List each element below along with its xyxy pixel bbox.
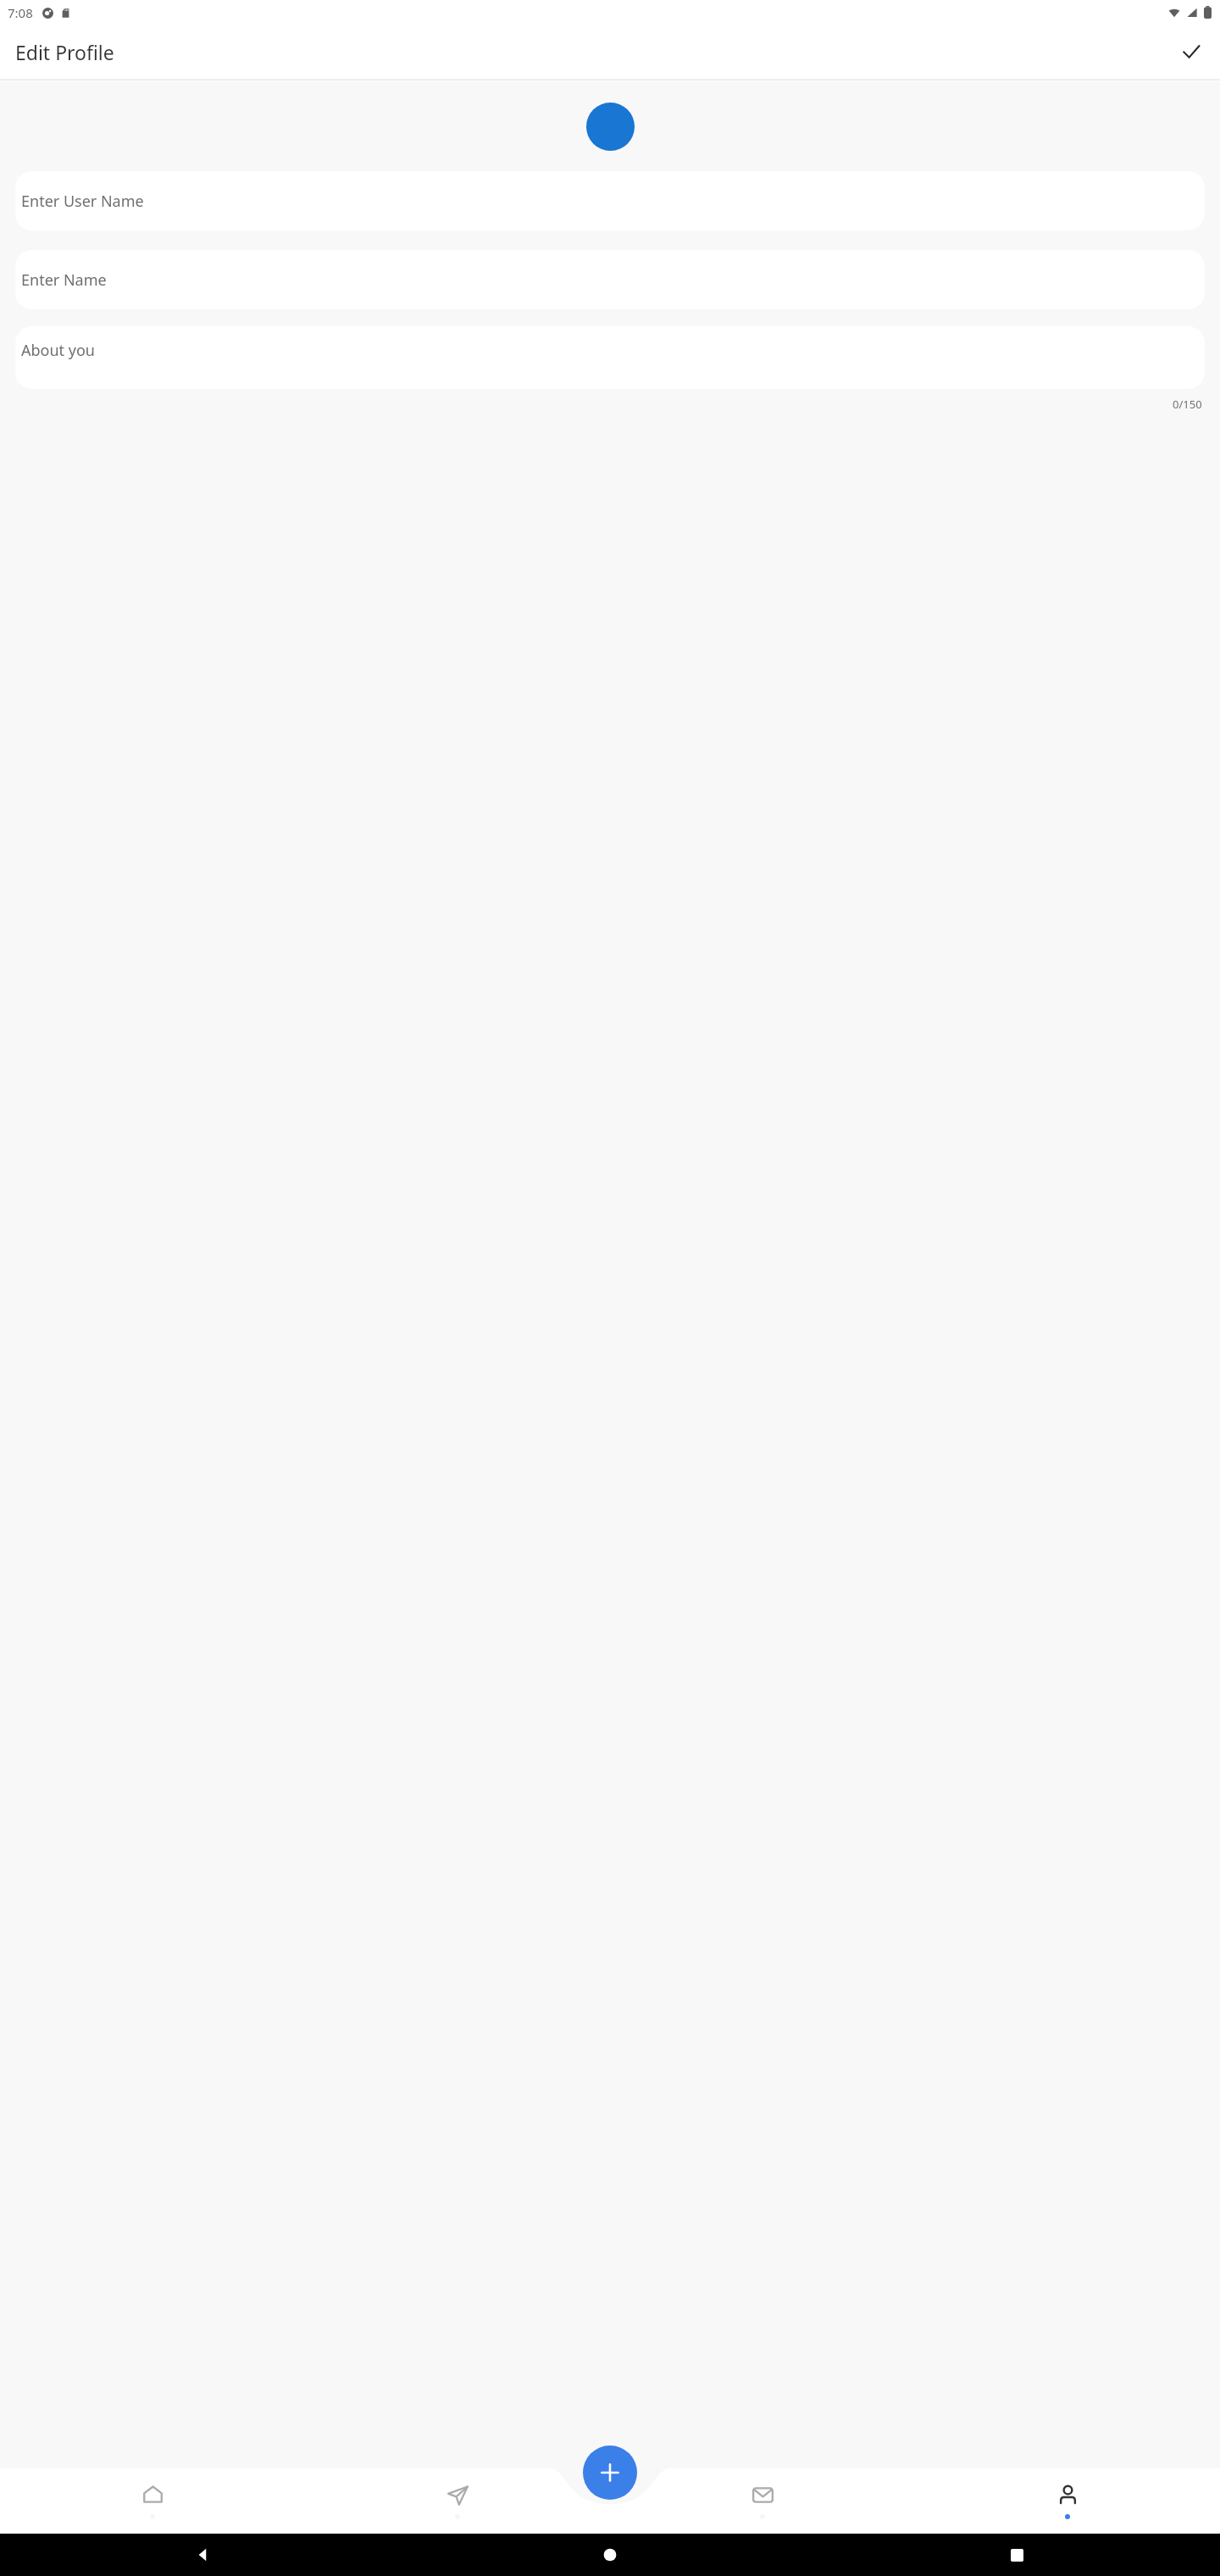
button[interactable]: Enter Name bbox=[15, 250, 1205, 309]
button[interactable]: Profile bbox=[915, 2468, 1220, 2534]
staticText: Enter User Name bbox=[21, 191, 144, 212]
button[interactable]: About you bbox=[15, 326, 1205, 389]
button[interactable]: Mail bbox=[610, 2468, 915, 2534]
staticText: 0/150 bbox=[1173, 397, 1202, 412]
button[interactable]: Change profile photo bbox=[586, 103, 635, 151]
staticText: Enter Name bbox=[21, 269, 107, 291]
button[interactable]: Messages bbox=[305, 2468, 610, 2534]
button[interactable]: Home bbox=[0, 2468, 305, 2534]
staticText: 7:08 bbox=[8, 4, 33, 21]
button[interactable]: Enter User Name bbox=[15, 171, 1205, 230]
button[interactable]: Save bbox=[1171, 31, 1212, 72]
staticText: Edit Profile bbox=[15, 39, 114, 65]
button[interactable]: Add bbox=[583, 2446, 637, 2500]
staticText: About you bbox=[21, 340, 95, 361]
